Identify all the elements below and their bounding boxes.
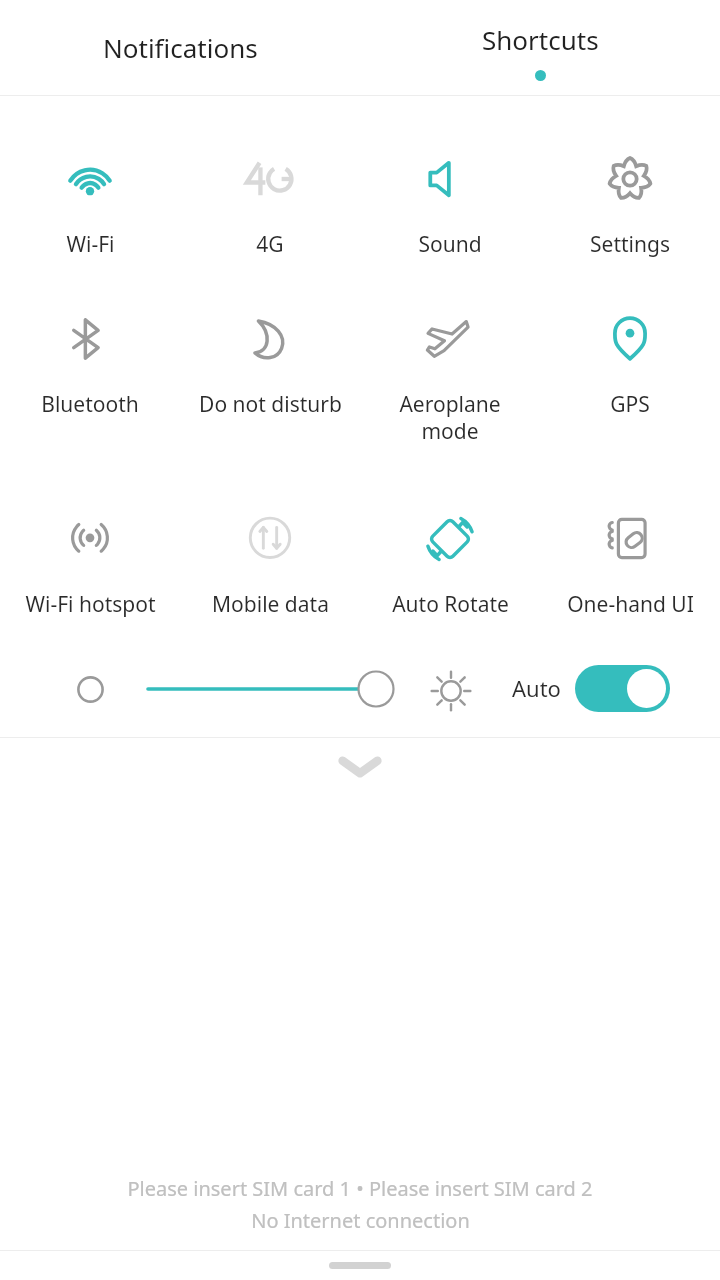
button[interactable]: Shortcuts — [360, 0, 720, 95]
staticText: Mobile data — [212, 590, 329, 619]
button[interactable]: GPS — [540, 294, 720, 494]
button[interactable]: One-hand UI — [540, 494, 720, 639]
staticText: 4G — [256, 230, 284, 259]
staticText: Settings — [590, 230, 670, 259]
button[interactable]: Do not disturb — [180, 294, 360, 494]
staticText: Do not disturb — [199, 390, 342, 419]
staticText: No Internet connection — [251, 1207, 470, 1234]
button[interactable]: Low brightness — [72, 671, 108, 707]
button[interactable]: Collapse panel — [0, 738, 720, 796]
staticText: Please insert SIM card 1 • Please insert… — [127, 1175, 593, 1202]
staticText: GPS — [610, 390, 650, 419]
staticText: Auto Rotate — [392, 590, 509, 619]
button[interactable]: Brightness — [136, 657, 408, 721]
staticText: Wi-Fi hotspot — [25, 590, 156, 619]
staticText: Notifications — [103, 30, 258, 65]
button[interactable]: Sound — [360, 134, 540, 294]
button[interactable]: Settings — [540, 134, 720, 294]
staticText: Sound — [418, 230, 482, 259]
staticText: Wi-Fi — [66, 230, 115, 259]
staticText: Auto — [512, 673, 561, 703]
staticText: One-hand UI — [567, 590, 694, 619]
button[interactable]: Wi-Fi — [0, 134, 180, 294]
button[interactable]: 4G — [180, 134, 360, 294]
button[interactable]: Bluetooth — [0, 294, 180, 494]
button[interactable]: Wi-Fi hotspot — [0, 494, 180, 639]
staticText: Shortcuts — [482, 22, 599, 57]
button[interactable]: High brightness — [425, 665, 477, 717]
staticText: Bluetooth — [41, 390, 139, 419]
button[interactable]: Auto Rotate — [360, 494, 540, 639]
staticText: Aeroplane mode — [399, 390, 501, 445]
button[interactable]: Notifications — [0, 0, 360, 95]
button[interactable]: Aeroplane mode — [360, 294, 540, 494]
button[interactable]: Mobile data — [180, 494, 360, 639]
button[interactable]: Auto — [512, 663, 670, 713]
